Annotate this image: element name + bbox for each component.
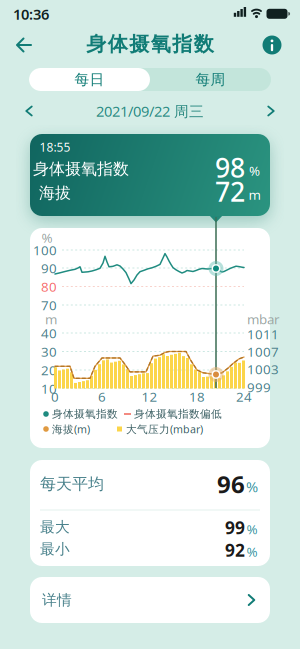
staticText: 每天平均 — [40, 474, 104, 494]
staticText: 每日 — [74, 70, 104, 88]
staticText: 大气压力(mbar) — [126, 422, 203, 436]
staticText: 999 — [247, 378, 271, 396]
staticText: 身体摄氧指数 — [52, 407, 118, 420]
staticText: 99 — [225, 516, 245, 539]
staticText: 详情 — [42, 591, 72, 609]
staticText: 24 — [236, 388, 252, 405]
staticText: 身体摄氧指数偏低 — [134, 407, 222, 420]
staticText: 每周 — [195, 70, 225, 88]
staticText: 10 — [41, 380, 57, 397]
staticText: % — [249, 162, 260, 179]
staticText: 海拔 — [39, 183, 71, 203]
button[interactable]: Info — [262, 35, 281, 54]
staticText: m — [45, 310, 57, 328]
staticText: 40 — [41, 324, 57, 342]
staticText: % — [246, 520, 257, 538]
staticText: % — [41, 229, 52, 246]
staticText: 70 — [41, 296, 57, 314]
staticText: 98 — [215, 150, 245, 185]
button[interactable]: Next day — [266, 104, 276, 117]
button[interactable]: Previous day — [24, 104, 34, 117]
staticText: % — [246, 543, 257, 560]
staticText: 最大 — [40, 518, 70, 536]
button[interactable]: Back — [12, 33, 36, 57]
staticText: 12 — [141, 388, 157, 405]
staticText: mbar — [247, 310, 280, 328]
staticText: m — [248, 186, 260, 203]
staticText: 最小 — [40, 540, 70, 558]
staticText: 1011 — [247, 325, 279, 343]
button[interactable]: 每周 — [150, 68, 271, 91]
button[interactable]: 每日 — [29, 68, 150, 91]
staticText: 6 — [98, 388, 106, 405]
staticText: 2021/09/22 周三 — [96, 101, 204, 121]
staticText: 10:36 — [13, 4, 49, 24]
staticText: 90 — [41, 259, 57, 277]
button[interactable]: 详情 — [30, 577, 270, 623]
staticText: 海拔(m) — [52, 422, 90, 436]
staticText: % — [246, 477, 258, 496]
staticText: 72 — [215, 174, 245, 209]
staticText: 18:55 — [39, 139, 70, 155]
staticText: 1007 — [247, 343, 279, 360]
staticText: 0 — [51, 388, 59, 405]
staticText: 80 — [41, 278, 57, 295]
staticText: 30 — [41, 343, 57, 360]
staticText: 身体摄氧指数 — [86, 32, 214, 56]
staticText: 96 — [217, 468, 245, 500]
staticText: 100 — [33, 241, 57, 259]
staticText: 18 — [189, 388, 205, 405]
staticText: 20 — [41, 361, 57, 379]
staticText: 1003 — [247, 360, 279, 378]
staticText: 92 — [225, 538, 245, 561]
staticText: 身体摄氧指数 — [33, 159, 129, 179]
